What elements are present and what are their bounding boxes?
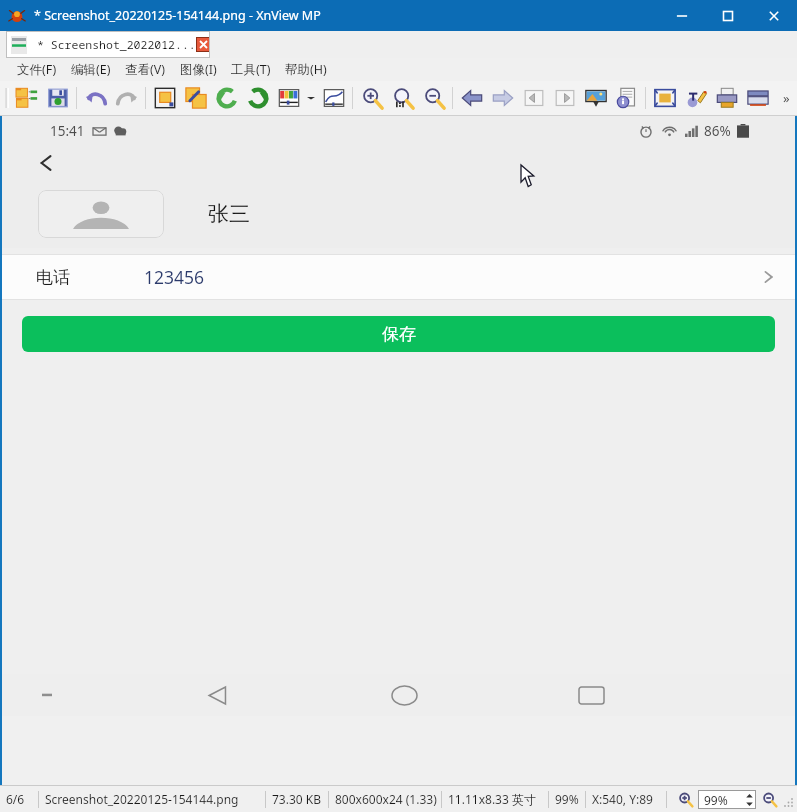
staticText: 工具(T) <box>231 61 271 78</box>
staticText: 86% <box>704 122 731 140</box>
staticText: Screenshot_20220125-154144.png <box>45 791 239 807</box>
button[interactable]: Adjust <box>273 83 304 113</box>
button[interactable]: Close <box>751 0 797 31</box>
button[interactable]: Resize <box>180 83 211 113</box>
button[interactable]: * Screenshot_2022012... <box>6 31 210 58</box>
button[interactable]: Maximize <box>705 0 751 31</box>
button[interactable]: Screenshot_20220125-154144.png <box>39 786 265 812</box>
button[interactable]: 11.11x8.33 英寸 <box>442 786 548 812</box>
button[interactable]: Minimize <box>659 0 705 31</box>
button[interactable]: Home <box>381 674 427 716</box>
button[interactable]: Zoom out <box>418 83 449 113</box>
staticText: X:540, Y:89 <box>592 791 653 807</box>
staticText: * Screenshot_2022012... <box>37 37 196 53</box>
button[interactable]: Annotate <box>680 83 711 113</box>
button[interactable]: 工具(T) <box>224 58 278 81</box>
button[interactable]: X:540, Y:89 <box>586 786 666 812</box>
button[interactable]: 73.30 KB <box>266 786 328 812</box>
staticText: 图像(I) <box>180 61 217 78</box>
button[interactable]: Close tab <box>196 37 210 52</box>
button[interactable]: Print <box>711 83 742 113</box>
button[interactable]: 图像(I) <box>173 58 224 81</box>
staticText: 帮助(H) <box>285 61 327 78</box>
staticText: 电话 <box>36 267 70 288</box>
button[interactable]: Rotate left <box>211 83 242 113</box>
button[interactable]: 800x600x24 (1.33) <box>329 786 441 812</box>
button[interactable]: Previous page <box>518 83 549 113</box>
button[interactable]: Edit phone <box>751 260 785 294</box>
button[interactable]: 编辑(E) <box>64 58 118 81</box>
staticText: * Screenshot_20220125-154144.png - XnVie… <box>34 7 321 24</box>
button[interactable]: Slideshow <box>580 83 611 113</box>
staticText: 99% <box>704 792 728 808</box>
button[interactable]: Previous <box>456 83 487 113</box>
button[interactable]: Scan <box>742 83 773 113</box>
staticText: 99% <box>555 791 579 807</box>
button[interactable]: 文件(F) <box>10 58 64 81</box>
button[interactable]: Undo <box>80 83 111 113</box>
button[interactable]: 6/6 <box>0 786 38 812</box>
button[interactable]: 99% <box>549 786 585 812</box>
staticText: 保存 <box>382 324 416 345</box>
staticText: 张三 <box>208 201 250 227</box>
button[interactable]: Rotate right <box>242 83 273 113</box>
staticText: » <box>783 89 790 107</box>
staticText: 文件(F) <box>17 61 57 78</box>
button[interactable]: 电话 <box>2 255 795 299</box>
button[interactable]: Curves <box>318 83 349 113</box>
staticText: 11.11x8.33 英寸 <box>448 791 536 807</box>
button[interactable]: Info <box>611 83 642 113</box>
staticText: 800x600x24 (1.33) <box>335 791 437 807</box>
button[interactable]: Back <box>194 674 240 716</box>
button[interactable]: More tools <box>775 81 797 115</box>
button[interactable]: 查看(V) <box>118 58 173 81</box>
button[interactable]: Browse <box>11 83 42 113</box>
button[interactable]: Zoom in <box>356 83 387 113</box>
button[interactable]: 帮助(H) <box>278 58 334 81</box>
button[interactable]: 张三 <box>2 180 795 248</box>
button[interactable]: Zoom out <box>756 786 782 812</box>
button[interactable]: Recent apps <box>568 674 614 716</box>
button[interactable]: Back <box>28 146 64 180</box>
button[interactable]: More adjust options <box>304 83 318 113</box>
staticText: 123456 <box>144 265 205 289</box>
button[interactable]: 保存 <box>22 316 775 352</box>
button[interactable]: Next <box>487 83 518 113</box>
button[interactable]: Next page <box>549 83 580 113</box>
staticText: 查看(V) <box>125 61 166 78</box>
staticText: 15:41 <box>50 122 85 140</box>
button[interactable]: Zoom in <box>672 786 698 812</box>
button[interactable]: Zoom 1:1 <box>387 83 418 113</box>
staticText: 编辑(E) <box>71 61 111 78</box>
button[interactable]: 99% <box>698 790 756 809</box>
button[interactable]: Crop <box>149 83 180 113</box>
button[interactable]: Save <box>42 83 73 113</box>
button[interactable]: Fit to window <box>649 83 680 113</box>
staticText: 6/6 <box>6 791 25 807</box>
staticText: 73.30 KB <box>272 791 322 807</box>
button[interactable]: Redo <box>111 83 142 113</box>
